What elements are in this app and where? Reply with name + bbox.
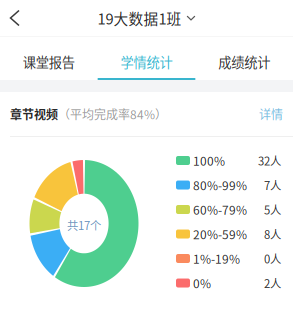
button[interactable]: 19大数据1班 [97, 7, 195, 29]
staticText: 80%-99% [193, 176, 247, 194]
staticText: 学情统计 [120, 52, 172, 71]
button[interactable]: Back [0, 0, 38, 36]
staticText: 共17个 [67, 217, 101, 233]
staticText: 0% [193, 274, 211, 292]
staticText: 章节视频 [10, 105, 58, 123]
staticText: 0人 [264, 250, 281, 267]
staticText: 7人 [264, 177, 281, 193]
staticText: 19大数据1班 [97, 7, 181, 29]
staticText: 60%-79% [193, 201, 247, 218]
button[interactable]: 课堂报告 [0, 36, 98, 80]
button[interactable]: 成绩统计 [195, 36, 293, 80]
staticText: 课堂报告 [23, 52, 75, 71]
staticText: 8人 [264, 226, 281, 242]
staticText: 100% [193, 152, 225, 169]
staticText: 5人 [264, 201, 281, 218]
button[interactable]: 详情 [259, 105, 283, 123]
staticText: 20%-59% [193, 225, 247, 243]
staticText: （平均完成率84%） [58, 105, 167, 123]
staticText: 1%-19% [193, 250, 240, 267]
staticText: 详情 [259, 105, 283, 123]
staticText: 32人 [258, 152, 281, 169]
staticText: 成绩统计 [218, 52, 270, 71]
button[interactable]: 学情统计 [98, 36, 195, 80]
staticText: 2人 [264, 275, 281, 291]
